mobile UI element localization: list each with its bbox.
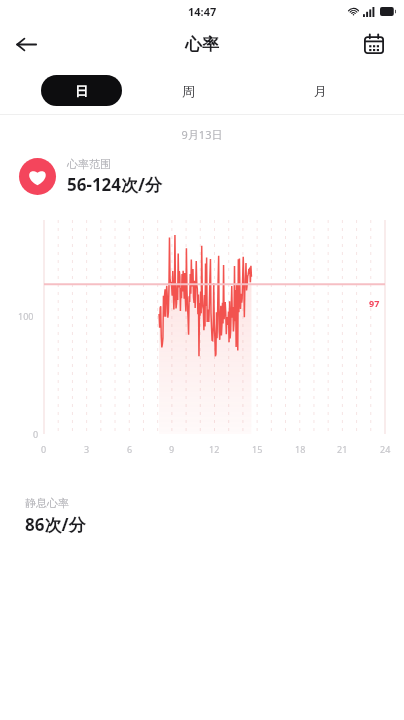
staticText: 0 (41, 443, 47, 455)
staticText: 3 (84, 443, 90, 455)
staticText: 21 (337, 443, 348, 455)
button[interactable]: 日 (41, 75, 122, 106)
staticText: 9月13日 (0, 127, 404, 142)
staticText: 86次/分 (25, 513, 86, 536)
staticText: 心率范围 (67, 157, 111, 171)
staticText: 18 (295, 443, 306, 455)
staticText: 心率 (185, 34, 219, 55)
staticText: 日 (75, 83, 88, 99)
button[interactable]: Calendar (354, 24, 394, 64)
button[interactable]: 心率范围 (19, 157, 404, 196)
staticText: 静息心率 (25, 496, 69, 510)
staticText: 月 (314, 83, 327, 99)
staticText: 24 (380, 443, 391, 455)
staticText: 12 (209, 443, 220, 455)
button[interactable]: 周 (122, 75, 254, 106)
staticText: 97 (369, 297, 380, 309)
staticText: 6 (127, 443, 133, 455)
staticText: 0 (33, 428, 39, 440)
button[interactable]: 月 (254, 75, 386, 106)
staticText: 周 (182, 83, 195, 99)
button[interactable]: Back (6, 24, 46, 64)
staticText: 15 (252, 443, 263, 455)
staticText: 14:47 (188, 4, 217, 19)
staticText: 56-124次/分 (67, 173, 163, 196)
button[interactable]: 静息心率 (25, 496, 404, 536)
staticText: 9 (169, 443, 175, 455)
staticText: 100 (18, 310, 34, 322)
